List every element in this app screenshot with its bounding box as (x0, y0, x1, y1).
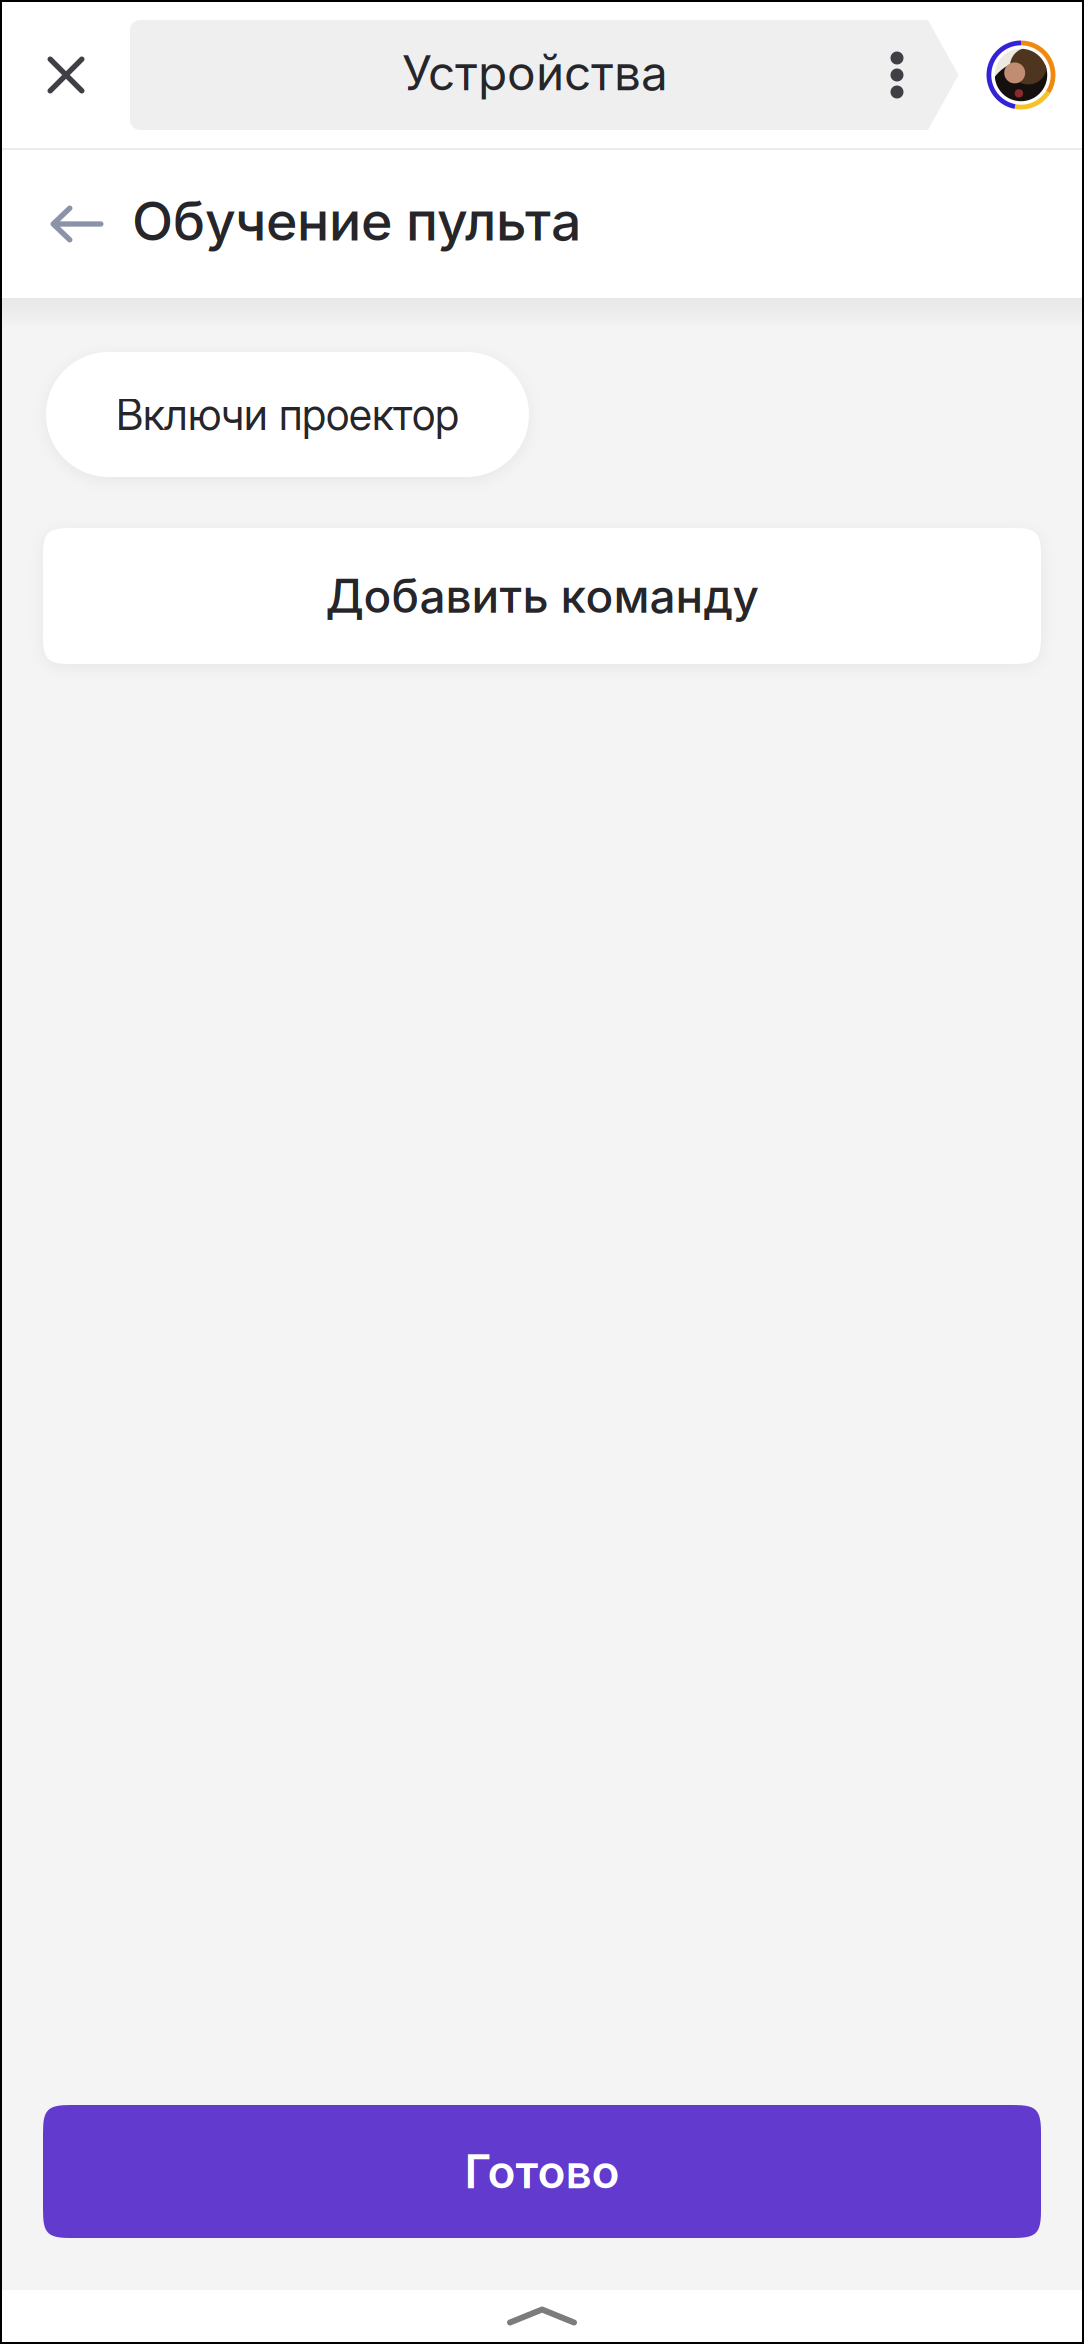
button[interactable]: Включи проектор (46, 352, 529, 477)
button[interactable]: Добавить команду (43, 528, 1041, 664)
staticText: Устройства (402, 44, 668, 102)
button[interactable]: Готово (43, 2105, 1041, 2238)
button[interactable]: Устройства (130, 20, 960, 130)
staticText: Готово (464, 2144, 619, 2199)
staticText: Включи проектор (116, 389, 459, 440)
button[interactable]: Закрыть (2, 2, 130, 148)
staticText: Добавить команду (325, 568, 758, 624)
button[interactable]: Профиль (960, 2, 1082, 148)
button[interactable]: Назад (2, 150, 134, 298)
staticText: Обучение пульта (132, 189, 581, 253)
